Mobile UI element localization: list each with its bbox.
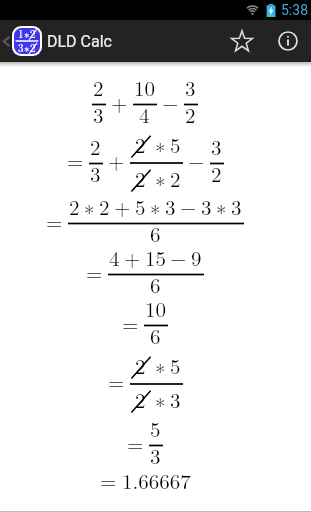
staticText: 2 (99, 191, 110, 221)
staticText: 2 (135, 350, 146, 380)
staticText: ∗ (84, 191, 95, 221)
staticText: 2 (135, 384, 146, 414)
staticText: 1.66667 (122, 465, 191, 495)
staticText: 3 (170, 384, 181, 414)
button[interactable]: Favorite (220, 20, 264, 62)
staticText: = (86, 257, 103, 287)
staticText: + (111, 87, 128, 117)
staticText: ∗ (155, 129, 166, 159)
staticText: 5 (135, 191, 146, 221)
staticText: 2 (135, 129, 146, 159)
staticText: ∗ (150, 191, 161, 221)
staticText: 10 (145, 293, 166, 323)
staticText: ∗ (24, 28, 30, 42)
staticText: 1 (18, 28, 24, 42)
staticText: = (127, 428, 144, 458)
staticText: − (170, 242, 187, 272)
staticText: − (188, 145, 205, 175)
button[interactable]: Info (264, 20, 311, 62)
staticText: 3 (18, 40, 24, 54)
staticText: 3 (185, 72, 196, 102)
staticText: 3 (231, 191, 242, 221)
other: Navigate up (3, 36, 10, 47)
staticText: 6 (150, 269, 161, 299)
staticText: 9 (191, 242, 202, 272)
staticText: 2 (135, 163, 146, 193)
staticText: 5 (170, 129, 181, 159)
staticText: ∗ (216, 191, 227, 221)
staticText: = (100, 465, 117, 495)
staticText: 2 (93, 72, 104, 102)
staticText: 3 (150, 440, 161, 470)
staticText: − (180, 191, 197, 221)
staticText: DLD Calc (47, 32, 112, 51)
staticText: ∗ (155, 163, 166, 193)
staticText: ∗ (24, 40, 30, 54)
staticText: 2 (170, 163, 181, 193)
staticText: 2 (69, 191, 80, 221)
staticText: 2 (30, 40, 36, 54)
staticText: 10 (134, 72, 155, 102)
staticText: 15 (145, 242, 166, 272)
staticText: 3 (90, 158, 101, 188)
staticText: 4 (139, 99, 150, 129)
staticText: 6 (150, 320, 161, 350)
staticText: 2 (90, 131, 101, 161)
staticText: 5 (150, 413, 161, 443)
staticText: + (114, 191, 131, 221)
staticText: − (162, 87, 179, 117)
staticText: 3 (201, 191, 212, 221)
staticText: 5 (170, 350, 181, 380)
staticText: 3 (165, 191, 176, 221)
staticText: 3 (93, 99, 104, 129)
staticText: 6 (150, 218, 161, 248)
staticText: 2 (30, 28, 36, 42)
staticText: = (46, 206, 63, 236)
staticText: 4 (109, 242, 120, 272)
staticText: 3 (211, 131, 222, 161)
button[interactable]: Navigate up (0, 20, 116, 62)
staticText: 2 (211, 158, 222, 188)
staticText: ∗ (155, 384, 166, 414)
staticText: = (122, 308, 139, 338)
staticText: = (67, 145, 84, 175)
staticText: + (124, 242, 141, 272)
staticText: 5:38 (281, 2, 308, 18)
staticText: = (108, 366, 125, 396)
staticText: + (108, 145, 125, 175)
staticText: 2 (185, 99, 196, 129)
staticText: ∗ (155, 350, 166, 380)
